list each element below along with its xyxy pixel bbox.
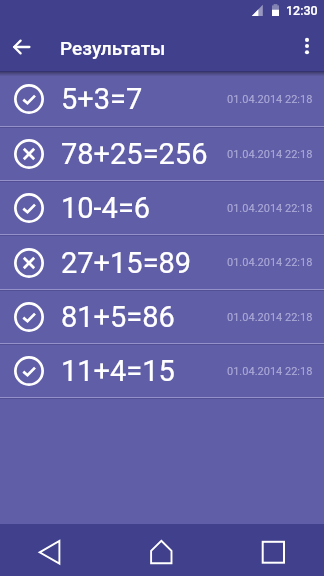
staticText: 5+3=7 [61, 82, 143, 116]
staticText: 11+4=15 [61, 354, 175, 388]
staticText: 01.04.2014 22:18 [227, 311, 313, 324]
button[interactable]: 27+15=89 [0, 236, 324, 291]
staticText: 01.04.2014 22:18 [227, 93, 313, 106]
staticText: 01.04.2014 22:18 [227, 365, 313, 378]
staticText: 01.04.2014 22:18 [227, 148, 313, 161]
staticText: 81+5=86 [61, 300, 175, 334]
button[interactable]: Home [100, 524, 224, 576]
staticText: 01.04.2014 22:18 [227, 202, 313, 215]
staticText: 12:30 [286, 3, 318, 18]
button[interactable]: 78+25=256 [0, 128, 324, 182]
staticText: Результаты [60, 37, 166, 59]
button[interactable]: 81+5=86 [0, 291, 324, 345]
staticText: 27+15=89 [61, 246, 192, 280]
button[interactable]: Back [0, 24, 46, 72]
button[interactable]: 5+3=7 [0, 72, 324, 128]
button[interactable]: More options [290, 24, 324, 72]
button[interactable]: Back [0, 524, 100, 576]
button[interactable]: Recents [224, 524, 324, 576]
button[interactable]: 11+4=15 [0, 345, 324, 399]
staticText: 78+25=256 [61, 137, 208, 171]
staticText: 01.04.2014 22:18 [227, 256, 313, 269]
button[interactable]: 10-4=6 [0, 182, 324, 236]
staticText: 10-4=6 [61, 191, 151, 225]
